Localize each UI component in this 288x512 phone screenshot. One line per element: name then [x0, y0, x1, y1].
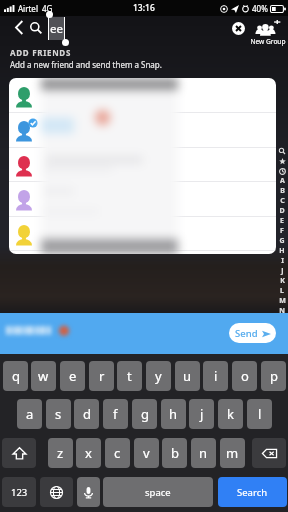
- button[interactable]: x: [76, 438, 101, 468]
- staticText: 4G: [42, 3, 53, 14]
- button[interactable]: d: [74, 399, 99, 429]
- button[interactable]: f: [103, 399, 128, 429]
- staticText: m: [226, 444, 239, 462]
- button[interactable]: u: [175, 361, 200, 391]
- button[interactable]: Back: [9, 18, 28, 37]
- button[interactable]: Clear search: [230, 20, 246, 36]
- staticText: F: [280, 226, 284, 236]
- staticText: N: [279, 306, 285, 316]
- button[interactable]: p: [261, 361, 286, 391]
- staticText: Add a new friend and send them a Snap.: [10, 59, 162, 70]
- staticText: t: [127, 367, 132, 385]
- staticText: 40%: [252, 3, 268, 14]
- staticText: Airtel: [18, 3, 38, 14]
- button[interactable]: c: [105, 438, 130, 468]
- button[interactable]: r: [89, 361, 114, 391]
- staticText: g: [141, 405, 149, 423]
- button[interactable]: n: [191, 438, 216, 468]
- button[interactable]: w: [31, 361, 56, 391]
- button[interactable]: m: [220, 438, 245, 468]
- button[interactable]: z: [48, 438, 73, 468]
- staticText: A: [280, 176, 285, 186]
- staticText: D: [279, 206, 285, 216]
- staticText: Send: [235, 327, 258, 340]
- staticText: L: [280, 286, 284, 296]
- staticText: y: [155, 367, 162, 385]
- staticText: c: [114, 444, 121, 462]
- button[interactable]: l: [247, 399, 272, 429]
- button[interactable]: o: [232, 361, 257, 391]
- staticText: n: [199, 444, 208, 462]
- staticText: f: [113, 405, 118, 423]
- button[interactable]: Send: [229, 323, 276, 343]
- staticText: a: [26, 405, 34, 423]
- button[interactable]: [9, 147, 276, 181]
- button[interactable]: g: [132, 399, 157, 429]
- button[interactable]: Voice input: [77, 477, 100, 507]
- staticText: q: [12, 367, 20, 385]
- button[interactable]: t: [117, 361, 142, 391]
- button[interactable]: j: [189, 399, 214, 429]
- button[interactable]: a: [17, 399, 42, 429]
- staticText: E: [280, 216, 284, 226]
- staticText: e: [69, 367, 77, 385]
- staticText: C: [280, 196, 285, 206]
- button[interactable]: 123: [2, 477, 36, 507]
- staticText: B: [280, 186, 285, 196]
- staticText: M: [279, 296, 286, 306]
- staticText: G: [279, 236, 285, 246]
- button[interactable]: k: [218, 399, 243, 429]
- staticText: Search: [237, 486, 268, 499]
- button[interactable]: h: [161, 399, 186, 429]
- button[interactable]: i: [203, 361, 228, 391]
- staticText: v: [143, 444, 150, 462]
- button[interactable]: New Group: [248, 18, 288, 46]
- button[interactable]: q: [3, 361, 28, 391]
- staticText: j: [200, 405, 204, 423]
- button[interactable]: [9, 216, 276, 250]
- staticText: H: [279, 246, 285, 256]
- button[interactable]: [9, 78, 276, 112]
- button[interactable]: Backspace: [252, 438, 286, 468]
- button[interactable]: [9, 181, 276, 215]
- staticText: x: [85, 444, 92, 462]
- button[interactable]: Search: [218, 477, 287, 507]
- button[interactable]: Change keyboard: [40, 477, 73, 507]
- staticText: h: [169, 405, 178, 423]
- staticText: K: [280, 276, 285, 286]
- staticText: b: [171, 444, 179, 462]
- staticText: 123: [11, 486, 28, 499]
- staticText: s: [55, 405, 62, 423]
- button[interactable]: Shift: [2, 438, 36, 468]
- staticText: l: [258, 405, 262, 423]
- staticText: u: [183, 367, 192, 385]
- staticText: w: [38, 367, 49, 385]
- button[interactable]: y: [146, 361, 171, 391]
- staticText: d: [83, 405, 91, 423]
- staticText: k: [227, 405, 234, 423]
- staticText: i: [214, 367, 218, 385]
- button[interactable]: v: [134, 438, 159, 468]
- button[interactable]: s: [46, 399, 71, 429]
- staticText: space: [145, 486, 171, 499]
- staticText: I: [281, 256, 284, 266]
- staticText: New Group: [248, 37, 288, 46]
- staticText: 13:16: [133, 2, 155, 14]
- staticText: ee: [50, 21, 63, 37]
- button[interactable]: space: [103, 477, 213, 507]
- button[interactable]: [9, 112, 276, 146]
- staticText: o: [241, 367, 249, 385]
- staticText: ADD FRIENDS: [10, 47, 72, 58]
- staticText: z: [57, 444, 64, 462]
- button[interactable]: b: [162, 438, 187, 468]
- staticText: r: [99, 367, 105, 385]
- button[interactable]: e: [60, 361, 85, 391]
- staticText: J: [281, 266, 284, 276]
- staticText: p: [270, 367, 278, 385]
